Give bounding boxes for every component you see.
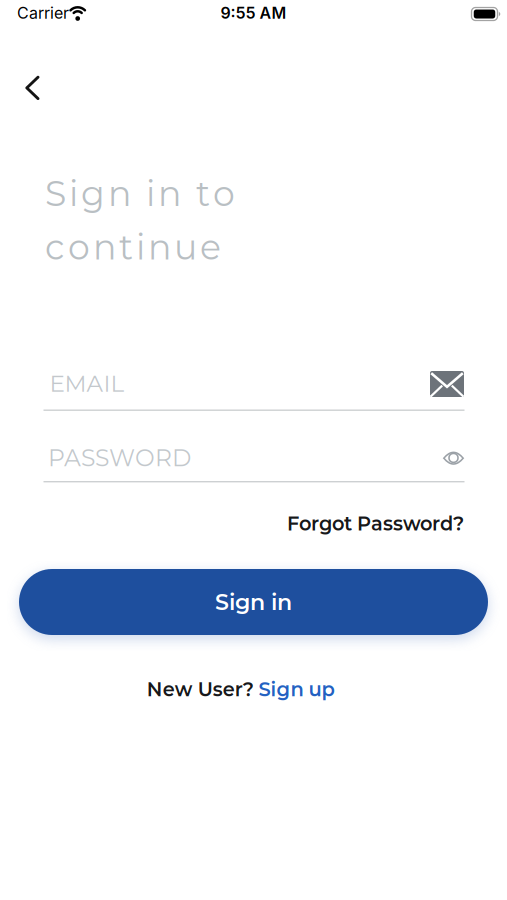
staticText: Sign up [258,677,334,701]
button[interactable]: PASSWORD [43,428,465,484]
button[interactable] [7,63,55,111]
staticText: S i g n i n t o [45,172,235,215]
staticText: EMAIL [49,369,124,397]
staticText: PASSWORD [48,444,191,472]
staticText: Forgot Password? [287,512,464,535]
staticText: Carrier [17,3,69,23]
button[interactable]: EMAIL [43,355,465,411]
staticText: 9:55 AM [220,3,286,23]
staticText: c o n t i n u e [45,226,221,268]
button[interactable]: Sign up [258,675,378,703]
button[interactable]: Forgot Password? [204,508,464,538]
staticText: Sign in [215,588,292,615]
button[interactable]: Sign in [19,569,488,635]
staticText: New User? [147,678,254,701]
